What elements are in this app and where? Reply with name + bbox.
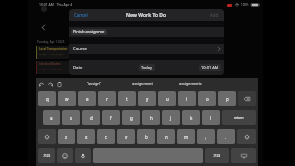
staticText: t: [126, 96, 128, 102]
button[interactable]: t: [118, 91, 136, 106]
button[interactable]: Dictate: [75, 148, 91, 163]
staticText: u: [166, 96, 169, 102]
button[interactable]: v: [117, 129, 135, 144]
staticText: “assign”: [87, 81, 101, 86]
staticText: m: [184, 134, 189, 140]
button[interactable]: Paste: [55, 80, 63, 88]
button[interactable]: Hide keyboard: [231, 148, 256, 163]
staticText: Local Transportation: [39, 47, 68, 51]
button[interactable]: .: [217, 129, 235, 144]
button[interactable]: ,: [197, 129, 215, 144]
staticText: p: [226, 96, 229, 102]
button[interactable]: assignment: [118, 78, 166, 89]
button[interactable]: x: [77, 129, 95, 144]
button[interactable]: Add: [205, 10, 224, 20]
button[interactable]: Emoji: [57, 148, 73, 163]
staticText: z: [65, 134, 68, 140]
staticText: assignments: [179, 81, 202, 86]
staticText: q: [46, 96, 49, 102]
button[interactable]: i: [178, 91, 196, 106]
button[interactable]: return: [222, 110, 256, 125]
button[interactable]: 10:01 AM: [199, 64, 221, 71]
button[interactable]: Redo: [46, 80, 54, 88]
staticText: 100%: [241, 3, 249, 7]
button[interactable]: u: [158, 91, 176, 106]
button[interactable]: b: [137, 129, 155, 144]
staticText: s: [70, 115, 73, 121]
staticText: .: [225, 134, 227, 140]
button[interactable]: Today: [139, 64, 155, 71]
staticText: b: [145, 134, 148, 140]
button[interactable]: Date: [69, 60, 224, 75]
button[interactable]: Shift: [38, 129, 56, 144]
staticText: f: [110, 115, 112, 121]
button[interactable]: p: [218, 91, 236, 106]
staticText: l: [210, 115, 212, 121]
staticText: k: [190, 115, 193, 121]
button[interactable]: c: [97, 129, 115, 144]
staticText: y: [146, 96, 149, 102]
staticText: v: [125, 134, 128, 140]
staticText: d: [90, 115, 93, 121]
button[interactable]: e: [78, 91, 96, 106]
button[interactable]: j: [162, 110, 180, 125]
button[interactable]: l: [202, 110, 220, 125]
staticText: g: [130, 115, 133, 121]
button[interactable]: .?123: [205, 148, 229, 163]
staticText: 10:01 AM Thu Apr 4: [39, 2, 73, 7]
staticText: All day | Astronomy: [39, 67, 63, 70]
staticText: assignment: [132, 81, 153, 86]
button[interactable]: y: [138, 91, 156, 106]
button[interactable]: Undo: [37, 80, 45, 88]
button[interactable]: .?123: [38, 148, 55, 163]
staticText: Today: [141, 65, 153, 70]
staticText: 10:01 AM: [201, 65, 219, 70]
button[interactable]: m: [177, 129, 195, 144]
staticText: n: [165, 134, 168, 140]
button[interactable]: n: [157, 129, 175, 144]
button[interactable]: a: [43, 110, 60, 125]
staticText: c: [105, 134, 108, 140]
staticText: Finish assignme: [73, 29, 105, 35]
button[interactable]: q: [38, 91, 56, 106]
button[interactable]: Finish assignme: [69, 27, 224, 37]
button[interactable]: Course: [69, 44, 224, 54]
button[interactable]: w: [58, 91, 76, 106]
button[interactable]: Shift: [237, 129, 256, 144]
staticText: j: [170, 115, 172, 121]
staticText: w: [65, 96, 69, 102]
staticText: i: [186, 96, 188, 102]
staticText: x: [85, 134, 88, 140]
button[interactable]: Backspace: [238, 91, 256, 106]
button[interactable]: Celestial Bodies: [36, 61, 76, 74]
button[interactable]: r: [98, 91, 116, 106]
button[interactable]: s: [62, 110, 80, 125]
staticText: r: [106, 96, 108, 102]
staticText: o: [206, 96, 209, 102]
staticText: a: [50, 115, 53, 121]
button[interactable]: f: [102, 110, 120, 125]
staticText: Tuesday, Apr 1 2025: [37, 40, 65, 44]
button[interactable]: o: [198, 91, 216, 106]
button[interactable]: “assign”: [70, 78, 118, 89]
button[interactable]: Back: [40, 24, 47, 31]
button[interactable]: Local Transportation: [36, 46, 76, 59]
staticText: h: [150, 115, 153, 121]
button[interactable]: h: [142, 110, 160, 125]
staticText: All day | 123 TO 456: [39, 52, 63, 55]
button[interactable]: assignments: [166, 78, 214, 89]
staticText: Celestial Bodies: [39, 62, 61, 66]
staticText: Date: [73, 65, 83, 71]
staticText: e: [86, 96, 89, 102]
staticText: New Work To Do: [126, 12, 167, 19]
staticText: return: [234, 116, 244, 120]
button[interactable]: d: [82, 110, 100, 125]
button[interactable]: Cancel: [69, 10, 93, 20]
button[interactable]: k: [182, 110, 200, 125]
button[interactable]: g: [122, 110, 140, 125]
button[interactable]: Account: [41, 6, 47, 12]
button[interactable]: z: [58, 129, 75, 144]
staticText: .?123: [43, 154, 51, 158]
staticText: Course: [73, 46, 87, 52]
